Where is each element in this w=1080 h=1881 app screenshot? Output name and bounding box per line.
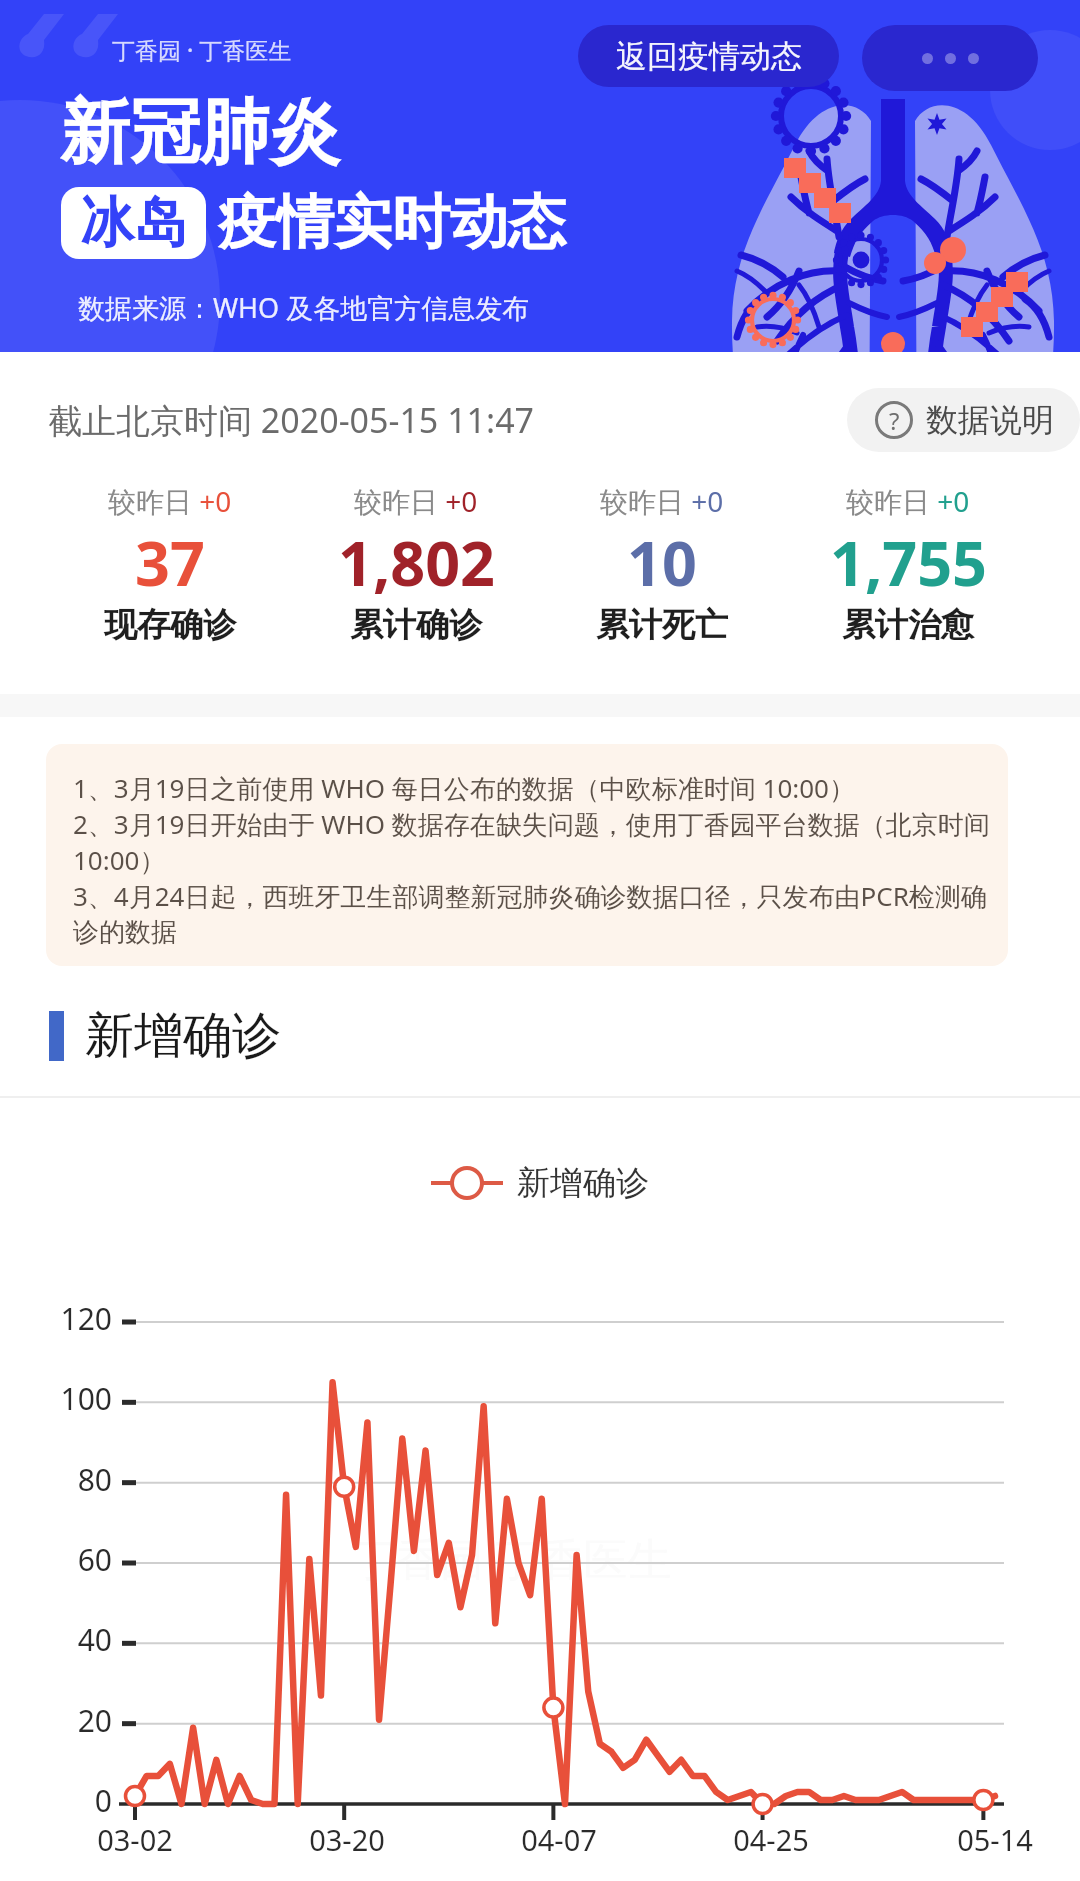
- staticText: 较昨日 +0: [354, 482, 478, 520]
- staticText: 80: [0, 1459, 112, 1500]
- button[interactable]: 返回疫情动态: [578, 25, 839, 87]
- staticText: 05-14: [925, 1820, 1065, 1859]
- button[interactable]: 较昨日 +0: [47, 482, 293, 646]
- staticText: 返回疫情动态: [616, 37, 802, 76]
- staticText: 现存确诊: [104, 604, 236, 646]
- staticText: 较昨日 +0: [108, 482, 232, 520]
- staticText: 37: [135, 521, 205, 604]
- staticText: 较昨日 +0: [600, 482, 724, 520]
- staticText: 丁香园 丁香医生: [352, 1528, 672, 1588]
- staticText: 新增确诊: [85, 1005, 281, 1067]
- staticText: 数据来源：WHO 及各地官方信息发布: [78, 289, 530, 326]
- staticText: 120: [0, 1298, 112, 1339]
- button[interactable]: 较昨日 +0: [293, 482, 539, 646]
- staticText: 截止北京时间 2020-05-15 11:47: [48, 397, 535, 443]
- staticText: 1,802: [338, 521, 495, 604]
- staticText: 04-07: [489, 1820, 629, 1859]
- staticText: 40: [0, 1619, 112, 1660]
- staticText: 03-20: [277, 1820, 417, 1859]
- staticText: 1,755: [830, 521, 987, 604]
- staticText: 100: [0, 1378, 112, 1419]
- button[interactable]: 较昨日 +0: [539, 482, 785, 646]
- staticText: 新增确诊: [517, 1162, 649, 1204]
- staticText: 03-02: [65, 1820, 205, 1859]
- staticText: 较昨日 +0: [846, 482, 970, 520]
- staticText: ?: [889, 404, 900, 437]
- staticText: 累计确诊: [350, 604, 482, 646]
- button[interactable]: 较昨日 +0: [785, 482, 1031, 646]
- staticText: 1、3月19日之前使用 WHO 每日公布的数据（中欧标准时间 10:00） 2、…: [73, 770, 1008, 949]
- staticText: 数据说明: [926, 400, 1054, 440]
- staticText: 累计治愈: [842, 604, 974, 646]
- button[interactable]: ?: [847, 388, 1080, 452]
- staticText: 04-25: [701, 1820, 841, 1859]
- staticText: 丁香园 · 丁香医生: [112, 34, 292, 65]
- staticText: 10: [627, 521, 697, 604]
- button[interactable]: More options: [862, 25, 1038, 91]
- staticText: 新冠肺炎: [60, 89, 340, 177]
- staticText: 冰岛: [80, 189, 188, 257]
- staticText: 60: [0, 1539, 112, 1580]
- staticText: 0: [0, 1780, 112, 1821]
- staticText: 20: [0, 1700, 112, 1741]
- staticText: 累计死亡: [596, 604, 728, 646]
- staticText: 疫情实时动态: [218, 186, 566, 259]
